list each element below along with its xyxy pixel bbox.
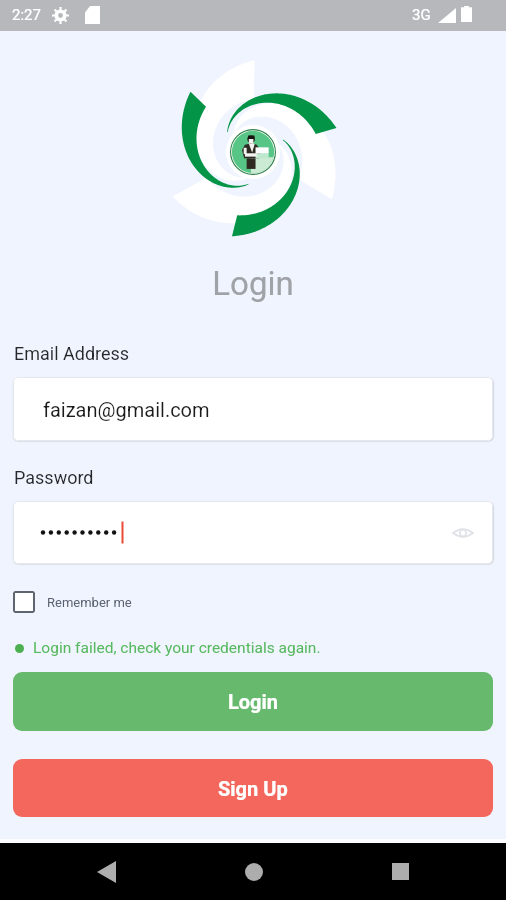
staticText: Email Address bbox=[14, 343, 130, 364]
staticText: 2:27 bbox=[12, 6, 41, 24]
staticText: 3G bbox=[412, 6, 431, 24]
staticText: faizan@gmail.com bbox=[43, 398, 210, 421]
staticText: Sign Up bbox=[218, 777, 288, 800]
button[interactable]: Remember me bbox=[13, 591, 132, 613]
button[interactable]: Recent apps bbox=[364, 843, 436, 900]
button[interactable]: Home bbox=[218, 843, 290, 900]
button[interactable]: Show password bbox=[13, 501, 493, 564]
staticText: Remember me bbox=[47, 595, 132, 610]
button[interactable]: Sign Up bbox=[13, 759, 493, 817]
staticText: Login bbox=[228, 690, 279, 713]
staticText: Password bbox=[14, 467, 94, 488]
button[interactable]: faizan@gmail.com bbox=[13, 377, 493, 441]
button[interactable]: Login bbox=[13, 672, 493, 731]
button[interactable]: Back bbox=[70, 843, 142, 900]
staticText: Login failed, check your credentials aga… bbox=[33, 639, 321, 657]
button[interactable]: Show password bbox=[448, 518, 478, 548]
staticText: Login bbox=[0, 264, 506, 303]
